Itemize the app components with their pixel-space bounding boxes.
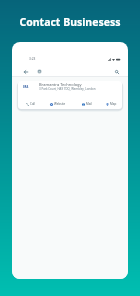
staticText: Bramantra Technology — [39, 82, 82, 87]
staticText: Map — [110, 102, 117, 106]
staticText: 3 Park Court, HA9 7DQ, Wembley, London — [39, 87, 96, 91]
staticText: Call — [30, 102, 36, 106]
button[interactable]: Back — [20, 66, 31, 77]
button[interactable]: Website — [50, 100, 66, 108]
staticText: Contact Businesess — [0, 15, 140, 29]
button[interactable]: BRAM — [18, 81, 122, 109]
button[interactable]: Search — [111, 66, 122, 77]
staticText: Mail — [86, 102, 92, 106]
button[interactable]: Mail — [82, 100, 92, 108]
button[interactable]: Map — [106, 100, 117, 108]
staticText: BRAM — [23, 85, 29, 88]
button[interactable]: Call — [26, 100, 36, 108]
staticText: 3:23 — [29, 57, 36, 61]
button[interactable]: Saved lists — [34, 66, 45, 77]
staticText: Website — [54, 102, 66, 106]
